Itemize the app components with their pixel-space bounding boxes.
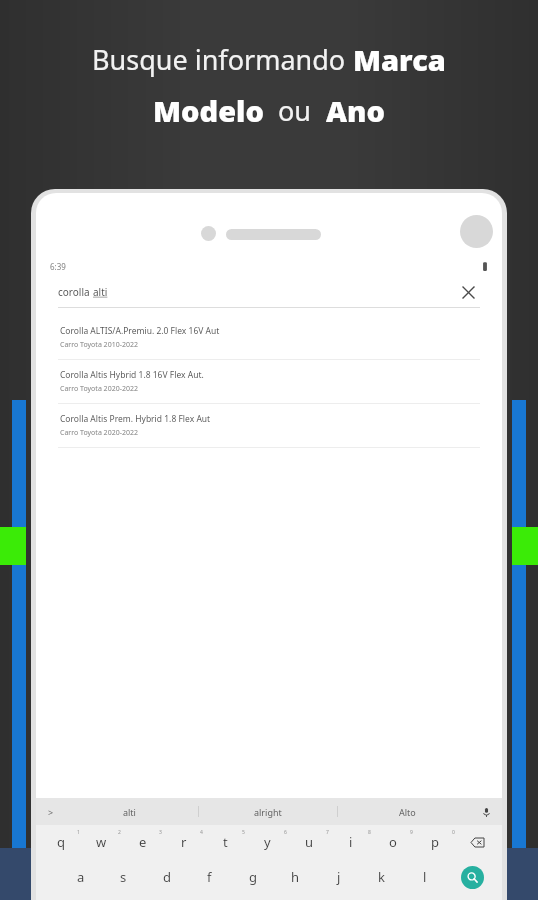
button[interactable]: alti [60, 798, 198, 825]
button[interactable]: u [288, 829, 330, 855]
button[interactable]: r [163, 829, 204, 855]
button[interactable]: k [360, 864, 403, 890]
staticText: Carro Toyota 2010-2022 [60, 340, 138, 350]
button[interactable]: y [246, 829, 288, 855]
staticText: Carro Toyota 2020-2022 [60, 384, 138, 394]
button[interactable]: i [330, 829, 372, 855]
staticText: s [120, 868, 127, 886]
staticText: Marca [353, 40, 446, 79]
staticText: Busque informando [92, 41, 353, 78]
button[interactable]: Search [461, 866, 484, 889]
staticText: Corolla ALTIS/A.Premiu. 2.0 Flex 16V Aut [60, 325, 220, 337]
staticText: Alto [399, 806, 416, 818]
staticText: i [349, 833, 353, 851]
button[interactable]: More suggestions [42, 803, 60, 821]
staticText: > [48, 806, 54, 818]
button[interactable]: Corolla Altis Hybrid 1.8 16V Flex Aut. [36, 360, 502, 404]
button[interactable]: a [60, 864, 102, 890]
staticText: e [139, 833, 147, 851]
button[interactable]: j [317, 864, 360, 890]
staticText: l [423, 868, 427, 886]
button[interactable]: g [231, 864, 274, 890]
staticText: h [291, 868, 300, 886]
staticText: 6 [284, 829, 287, 836]
button[interactable]: Clear search [456, 280, 480, 304]
button[interactable]: l [403, 864, 446, 890]
button[interactable]: p [414, 829, 456, 855]
button[interactable]: Backspace [456, 829, 498, 855]
button[interactable]: s [102, 864, 145, 890]
button[interactable]: e [122, 829, 163, 855]
staticText: a [77, 868, 85, 886]
staticText: Corolla Altis Hybrid 1.8 16V Flex Aut. [60, 369, 204, 381]
staticText: g [249, 868, 257, 886]
button[interactable]: w [81, 829, 122, 855]
button[interactable]: f [188, 864, 231, 890]
staticText: Corolla Altis Prem. Hybrid 1.8 Flex Aut [60, 413, 211, 425]
staticText: 0 [452, 829, 455, 836]
staticText: o [389, 833, 397, 851]
button[interactable]: Corolla Altis Prem. Hybrid 1.8 Flex Aut [36, 404, 502, 448]
button[interactable]: q [40, 829, 81, 855]
staticText: u [305, 833, 314, 851]
button[interactable]: Corolla ALTIS/A.Premiu. 2.0 Flex 16V Aut [36, 316, 502, 360]
staticText: t [223, 833, 228, 851]
staticText: f [207, 868, 212, 886]
staticText: 3 [159, 829, 162, 836]
button[interactable]: alright [199, 798, 337, 825]
staticText: q [57, 833, 65, 851]
staticText: k [378, 868, 385, 886]
staticText: Carro Toyota 2020-2022 [60, 428, 138, 438]
button[interactable]: Voice input [476, 802, 496, 822]
button[interactable]: d [145, 864, 188, 890]
staticText: r [181, 833, 187, 851]
staticText: alti [93, 285, 108, 299]
staticText: 8 [368, 829, 371, 836]
staticText: 2 [118, 829, 121, 836]
staticText: alti [123, 806, 136, 818]
staticText: 5 [242, 829, 245, 836]
staticText: Ano [326, 91, 385, 130]
button[interactable]: h [274, 864, 317, 890]
button[interactable]: o [372, 829, 414, 855]
staticText: y [264, 833, 271, 851]
staticText: corolla [58, 285, 93, 299]
staticText: 4 [200, 829, 203, 836]
staticText: d [163, 868, 171, 886]
staticText: 1 [77, 829, 80, 836]
button[interactable]: Alto [338, 798, 476, 825]
staticText: p [431, 833, 439, 851]
staticText: w [96, 833, 107, 851]
button[interactable]: corolla [58, 277, 480, 307]
staticText: ou [264, 92, 326, 129]
button[interactable]: t [204, 829, 246, 855]
staticText: 7 [326, 829, 329, 836]
staticText: 9 [410, 829, 413, 836]
staticText: 6:39 [50, 261, 66, 272]
staticText: Modelo [153, 91, 264, 130]
staticText: j [337, 868, 341, 886]
staticText: alright [254, 806, 282, 818]
